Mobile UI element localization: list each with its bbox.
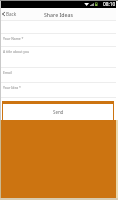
staticText: Your Idea * (3, 85, 21, 90)
staticText: 08:10 (103, 1, 116, 8)
button[interactable]: Your Idea * (1, 82, 116, 97)
staticText: Your Name * (3, 36, 24, 41)
button[interactable]: Your Name * (1, 33, 116, 47)
button[interactable]: A title about you (1, 46, 116, 67)
staticText: A title about you (3, 49, 30, 54)
staticText: Share Ideas (44, 11, 74, 18)
button[interactable]: Email (1, 67, 116, 82)
staticText: Back (6, 11, 17, 17)
button[interactable]: Send (3, 104, 113, 120)
staticText: Send (53, 109, 64, 115)
staticText: Email (3, 70, 12, 75)
button[interactable]: Back (2, 11, 17, 17)
